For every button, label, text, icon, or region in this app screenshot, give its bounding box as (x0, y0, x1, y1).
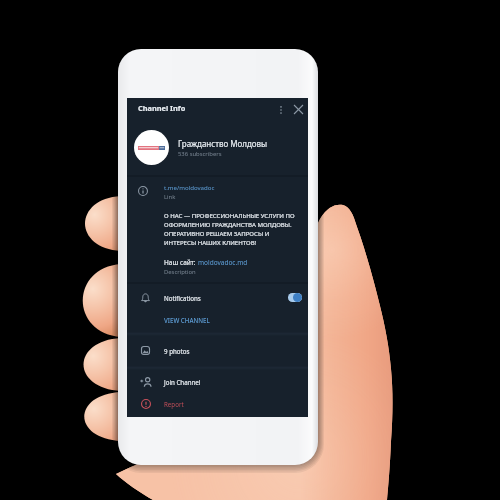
button[interactable]: t.me/moldovadoc (164, 182, 244, 203)
staticText: Description (164, 268, 196, 276)
staticText: 536 subscribers (178, 150, 222, 158)
staticText: Наш сайт: (164, 258, 198, 267)
button[interactable]: More options (272, 101, 289, 118)
staticText: t.me/moldovadoc (164, 183, 215, 191)
button[interactable]: Join Channel (127, 369, 308, 394)
staticText: Report (164, 400, 184, 408)
button[interactable]: Notifications toggle (288, 293, 302, 302)
staticText: О НАС — ПРОФЕССИОНАЛЬНЫЕ УСЛУГИ ПО ОФОРМ… (164, 211, 314, 247)
staticText: Link (164, 193, 176, 201)
button[interactable]: Close (290, 101, 307, 118)
button[interactable]: Notifications (127, 285, 308, 310)
staticText: Notifications (164, 294, 201, 302)
button[interactable]: Report (127, 391, 308, 416)
staticText: Join Channel (164, 378, 201, 386)
button[interactable]: moldovadoc.md (198, 258, 248, 267)
staticText: Гражданство Молдовы (178, 138, 268, 149)
staticText: VIEW CHANNEL (164, 316, 210, 324)
staticText: 9 photos (164, 347, 190, 355)
button[interactable]: Гражданство Молдовы (127, 119, 308, 174)
staticText: Channel Info (138, 103, 186, 113)
button[interactable]: VIEW CHANNEL (127, 310, 308, 329)
button[interactable]: 9 photos (127, 338, 308, 363)
